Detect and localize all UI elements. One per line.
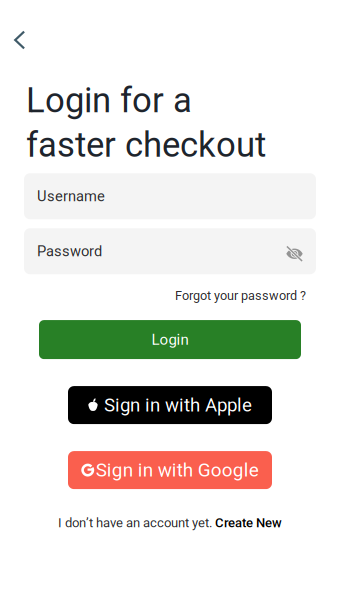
staticText: I don’t have an account yet. [58, 515, 215, 530]
button[interactable]: Forgot your password ? [175, 288, 306, 303]
button[interactable]: Username [24, 173, 316, 219]
staticText: Sign in with Google [96, 459, 259, 481]
staticText: Login for a [26, 80, 192, 121]
staticText: Forgot your password ? [175, 288, 306, 303]
staticText: Sign in with Apple [104, 394, 252, 416]
button[interactable]: Password [37, 228, 273, 274]
button[interactable]: Sign in with Google [68, 451, 272, 489]
staticText: Username [37, 188, 105, 205]
button[interactable]: Create New [215, 515, 282, 530]
staticText: faster checkout [26, 125, 266, 165]
button[interactable]: Back [3, 23, 37, 57]
staticText: Login [151, 331, 188, 348]
button[interactable]: Sign in with Apple [68, 386, 272, 424]
staticText: Password [37, 243, 102, 260]
button[interactable]: Login [39, 320, 301, 359]
staticText: Create New [215, 515, 282, 530]
button[interactable]: Show password [273, 231, 303, 271]
